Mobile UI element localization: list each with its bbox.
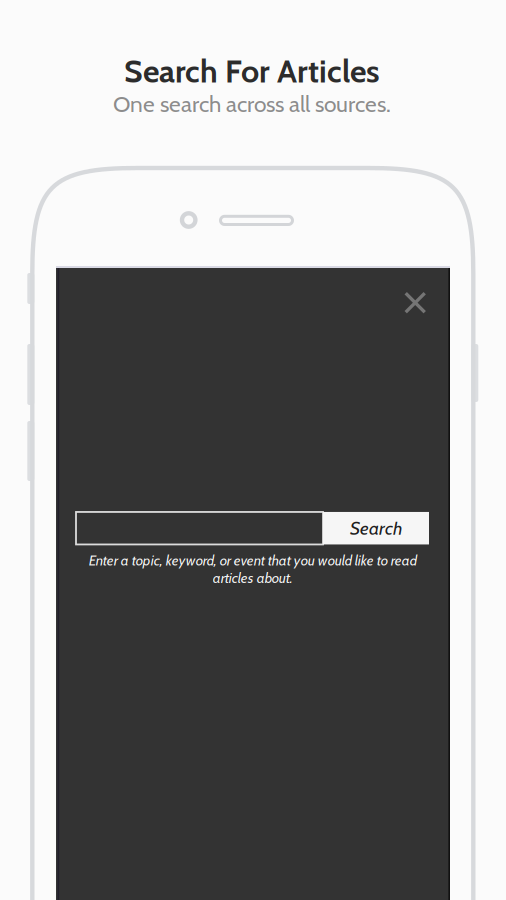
staticText: Search <box>350 517 402 540</box>
staticText: Enter a topic, keyword, or event that yo… <box>88 551 416 586</box>
button[interactable]: Search text field <box>76 512 323 544</box>
staticText: One search across all sources. <box>113 90 391 118</box>
button[interactable]: Search <box>323 512 429 544</box>
staticText: Search For Articles <box>124 52 380 90</box>
button[interactable]: Close search <box>396 284 434 322</box>
